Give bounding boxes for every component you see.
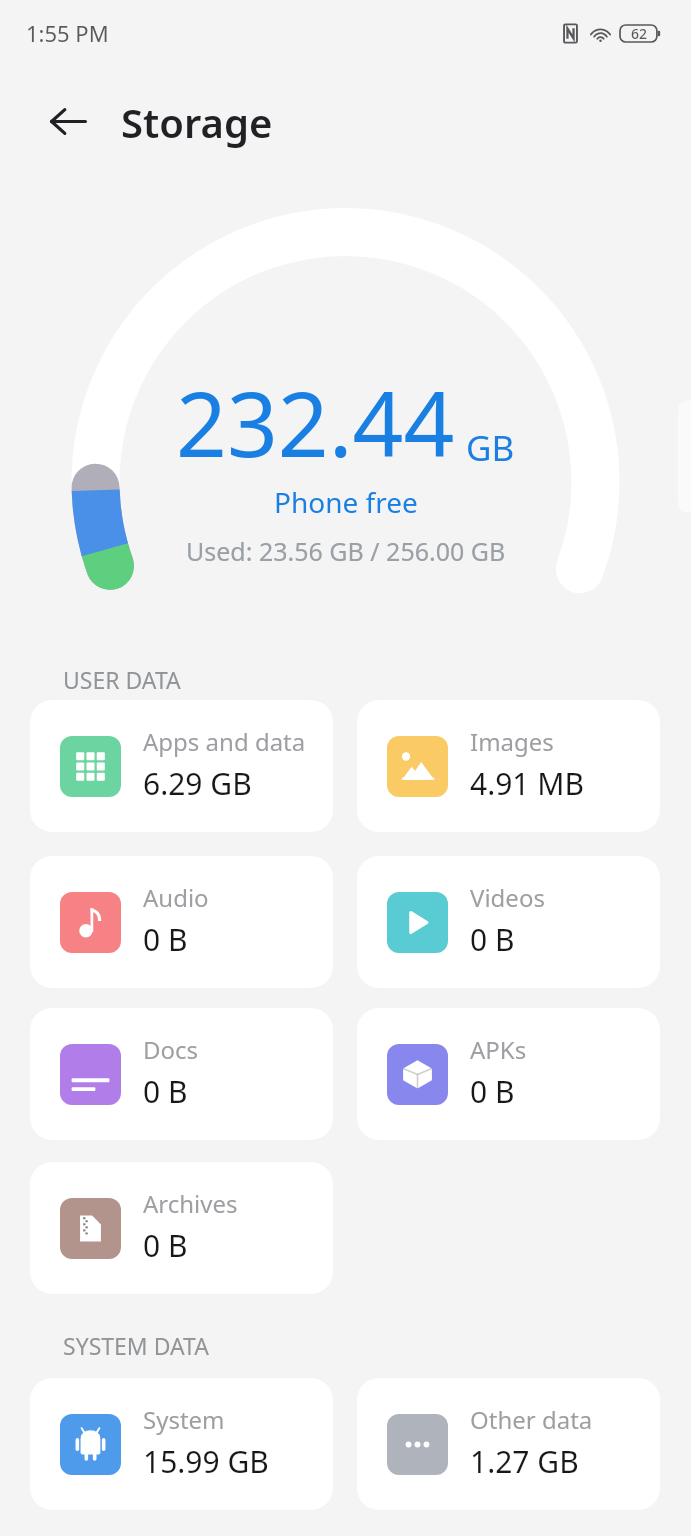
staticText: 0 B xyxy=(143,1071,188,1112)
button[interactable]: Archives xyxy=(30,1162,333,1294)
staticText: GB xyxy=(466,424,515,472)
staticText: Videos xyxy=(470,881,545,914)
staticText: Phone free xyxy=(274,483,418,521)
staticText: System xyxy=(143,1403,225,1436)
staticText: Used: 23.56 GB / 256.00 GB xyxy=(186,534,506,568)
staticText: USER DATA xyxy=(63,664,181,695)
staticText: Archives xyxy=(143,1187,238,1220)
staticText: 1:55 PM xyxy=(26,18,109,48)
button[interactable]: Back xyxy=(39,92,98,151)
button[interactable]: Docs xyxy=(30,1008,333,1140)
staticText: 232.44 xyxy=(176,362,455,483)
button[interactable]: System xyxy=(30,1378,333,1510)
staticText: 1.27 GB xyxy=(470,1441,579,1482)
button[interactable]: APKs xyxy=(357,1008,660,1140)
staticText: 15.99 GB xyxy=(143,1441,269,1482)
staticText: Images xyxy=(470,725,554,758)
button[interactable]: Other data xyxy=(357,1378,660,1510)
staticText: 62 xyxy=(631,24,648,43)
staticText: 0 B xyxy=(143,1225,188,1266)
staticText: 6.29 GB xyxy=(143,763,252,804)
staticText: SYSTEM DATA xyxy=(63,1330,209,1361)
button[interactable]: Audio xyxy=(30,856,333,988)
staticText: 0 B xyxy=(470,919,515,960)
staticText: 4.91 MB xyxy=(470,763,585,804)
staticText: Other data xyxy=(470,1403,593,1436)
button[interactable]: Images xyxy=(357,700,660,832)
staticText: Storage xyxy=(121,95,273,149)
staticText: APKs xyxy=(470,1033,527,1066)
staticText: Docs xyxy=(143,1033,199,1066)
staticText: 0 B xyxy=(470,1071,515,1112)
button[interactable]: Apps and data xyxy=(30,700,333,832)
staticText: Audio xyxy=(143,881,209,914)
staticText: Apps and data xyxy=(143,725,306,758)
button[interactable]: Videos xyxy=(357,856,660,988)
staticText: 0 B xyxy=(143,919,188,960)
